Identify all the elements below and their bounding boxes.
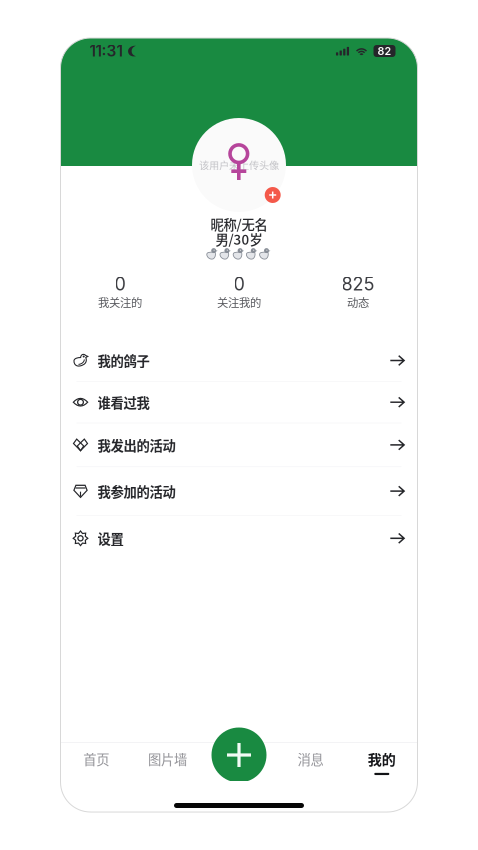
button[interactable]: 我发出的活动 [60,423,417,466]
staticText: 首页 [83,749,109,768]
staticText: 昵称/无名 [210,214,267,234]
button[interactable]: 图片墙 [132,743,203,781]
staticText: 0 [114,273,125,295]
staticText: 0 [233,273,244,295]
button[interactable]: 0 [60,275,179,309]
staticText: 该用户未上传头像 [199,158,279,172]
button[interactable]: 我参加的活动 [60,467,417,515]
staticText: 我的 [368,749,396,769]
staticText: 我的鸽子 [97,351,149,370]
staticText: 动态 [347,294,369,310]
button[interactable]: 825 [298,275,417,309]
button[interactable]: 首页 [60,743,132,781]
button[interactable]: 我的鸽子 [60,340,417,381]
button[interactable]: Create [211,727,266,782]
staticText: 谁看过我 [97,392,149,412]
staticText: 设置 [97,529,123,548]
staticText: 图片墙 [148,749,187,768]
staticText: 825 [341,273,374,295]
button[interactable]: 我的 [346,743,417,781]
button[interactable]: 消息 [275,743,346,781]
staticText: 关注我的 [217,294,261,310]
staticText: 消息 [297,749,323,768]
staticText: 11:31 [89,42,122,60]
button[interactable]: 谁看过我 [60,382,417,423]
staticText: 我参加的活动 [97,481,175,501]
staticText: 男/30岁 [215,229,262,249]
staticText: 我发出的活动 [97,435,175,454]
button[interactable]: 0 [179,275,298,309]
button[interactable]: 设置 [60,516,417,561]
staticText: 我关注的 [98,294,142,310]
staticText: 82 [377,44,391,57]
